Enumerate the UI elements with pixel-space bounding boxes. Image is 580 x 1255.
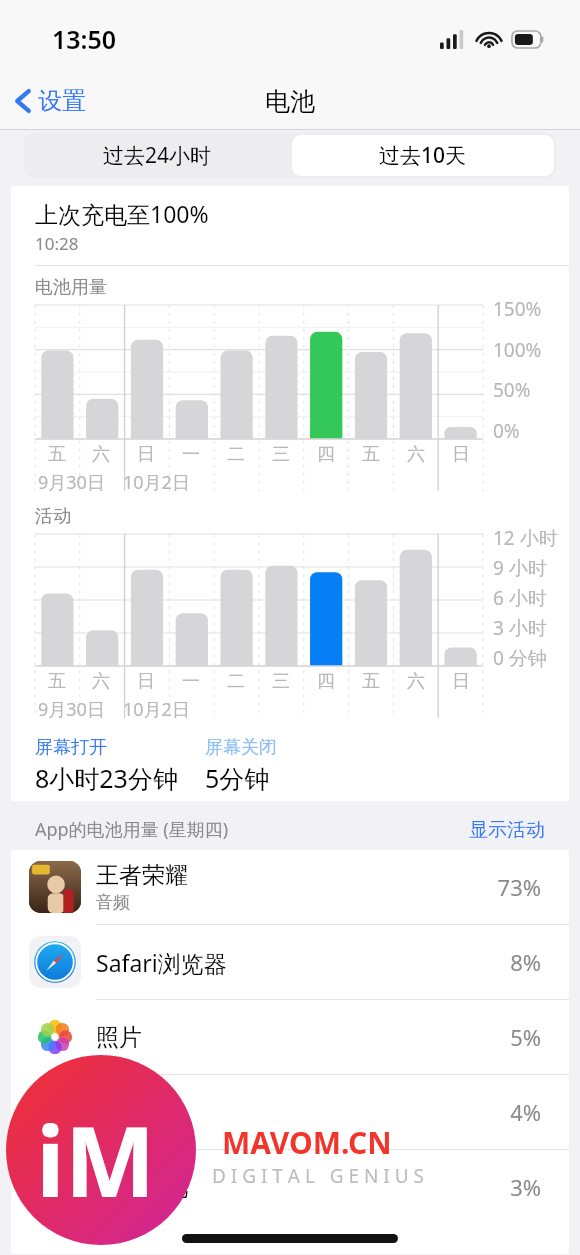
staticText: 73% — [497, 872, 541, 902]
staticText: 活动 — [35, 505, 71, 528]
staticText: 一 — [182, 443, 200, 466]
staticText: 3% — [510, 1172, 541, 1202]
staticText: 过去24小时 — [103, 141, 212, 170]
staticText: 二 — [227, 443, 245, 466]
staticText: 日 — [137, 670, 155, 693]
staticText: 三 — [272, 670, 290, 693]
button[interactable]: Safari浏览器 — [11, 925, 569, 999]
staticText: 3 小时 — [493, 615, 547, 641]
staticText: 电池 — [265, 86, 315, 117]
staticText: 三 — [272, 443, 290, 466]
staticText: 百度贴吧 — [96, 1173, 188, 1202]
staticText: 6 小时 — [493, 585, 547, 611]
button[interactable]: 微信 — [11, 1075, 569, 1149]
staticText: 设置 — [38, 86, 86, 116]
staticText: 四 — [317, 670, 335, 693]
staticText: 五 — [48, 443, 66, 466]
button[interactable]: 王者荣耀 — [11, 850, 569, 924]
staticText: 五 — [48, 670, 66, 693]
staticText: 王者荣耀 — [96, 861, 188, 890]
staticText: 13:50 — [52, 22, 117, 56]
staticText: 五 — [362, 670, 380, 693]
staticText: 屏幕打开 — [35, 736, 107, 759]
staticText: 五 — [362, 443, 380, 466]
button[interactable]: 照片 — [11, 1000, 569, 1074]
staticText: 10月2日 — [123, 470, 190, 495]
staticText: 9月30日 — [38, 697, 105, 722]
staticText: 日 — [452, 443, 470, 466]
button[interactable]: 百度贴吧 — [11, 1150, 569, 1224]
staticText: 12 小时 — [493, 525, 558, 551]
button[interactable]: 过去24小时 — [24, 133, 290, 178]
staticText: 0 分钟 — [493, 645, 547, 671]
staticText: 100% — [493, 337, 542, 363]
staticText: 50% — [493, 377, 531, 403]
staticText: 10月2日 — [123, 697, 190, 722]
staticText: 微信 — [96, 1098, 142, 1127]
staticText: 日 — [137, 443, 155, 466]
staticText: 四 — [317, 443, 335, 466]
button[interactable]: 设置 — [0, 80, 98, 122]
staticText: 一 — [182, 670, 200, 693]
staticText: App的电池用量 (星期四) — [35, 817, 229, 842]
staticText: 六 — [92, 443, 110, 466]
staticText: 5% — [510, 1022, 541, 1052]
staticText: D I G I T A L G E N I U S — [212, 1163, 425, 1189]
staticText: Safari浏览器 — [96, 947, 227, 978]
staticText: 音频 — [96, 892, 130, 913]
staticText: 日 — [452, 670, 470, 693]
staticText: 六 — [407, 670, 425, 693]
staticText: 8% — [510, 947, 541, 977]
staticText: 电池用量 — [35, 276, 107, 299]
button[interactable]: 显示活动 — [469, 818, 545, 842]
staticText: 六 — [407, 443, 425, 466]
staticText: 9 小时 — [493, 555, 547, 581]
staticText: 9月30日 — [38, 470, 105, 495]
staticText: iM — [36, 1094, 156, 1225]
staticText: 4% — [510, 1097, 541, 1127]
staticText: 8小时23分钟 — [35, 761, 178, 795]
staticText: 显示活动 — [469, 818, 545, 842]
staticText: 过去10天 — [379, 141, 467, 170]
staticText: 照片 — [96, 1023, 142, 1052]
staticText: 屏幕关闭 — [205, 736, 277, 759]
button[interactable]: 过去10天 — [292, 135, 554, 176]
staticText: MAVOM.CN — [222, 1122, 392, 1163]
staticText: 5分钟 — [205, 761, 270, 795]
staticText: 二 — [227, 670, 245, 693]
staticText: 上次充电至100% — [35, 198, 209, 229]
staticText: 150% — [493, 296, 542, 322]
staticText: 0% — [493, 418, 520, 444]
staticText: 10:28 — [35, 232, 79, 255]
staticText: 六 — [92, 670, 110, 693]
